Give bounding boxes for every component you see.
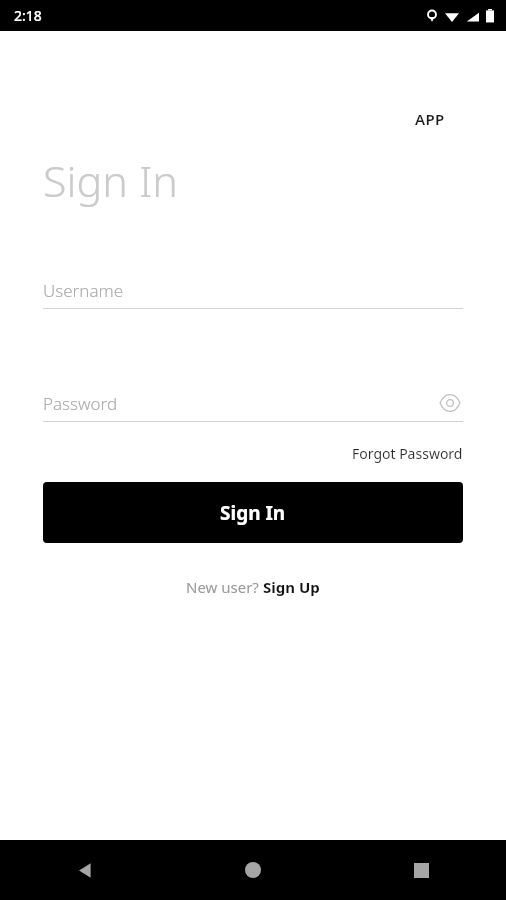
staticText: Sign In — [43, 151, 178, 210]
button[interactable]: Home — [168, 840, 337, 900]
staticText: Username — [43, 279, 124, 302]
button[interactable]: Show password — [437, 391, 463, 415]
staticText: 2:18 — [14, 6, 42, 25]
staticText: Sign Up — [263, 577, 320, 597]
staticText: Password — [43, 392, 118, 415]
staticText: APP — [415, 109, 445, 129]
button[interactable]: Recent apps — [337, 840, 506, 900]
staticText: New user? — [186, 577, 263, 597]
button[interactable]: Sign Up — [263, 577, 320, 597]
button[interactable]: Sign In — [43, 482, 463, 543]
button[interactable]: APP — [415, 109, 445, 129]
staticText: Forgot Password — [352, 444, 463, 463]
button[interactable]: Forgot Password — [352, 444, 463, 463]
button[interactable]: Back — [0, 840, 168, 900]
staticText: Sign In — [220, 500, 286, 526]
